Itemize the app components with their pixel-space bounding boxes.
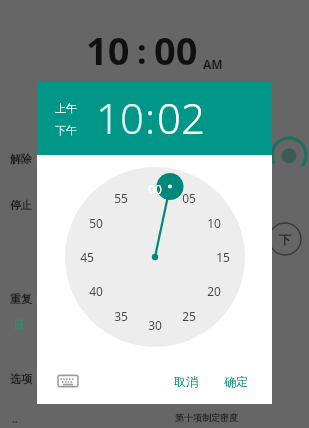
button[interactable]: 下 [268,222,302,256]
button[interactable]: 45 [74,244,100,270]
button[interactable]: 30 [142,312,168,338]
button[interactable]: Switch to keyboard input [52,365,84,397]
staticText: 日 [13,318,24,332]
button[interactable]: 10 [201,210,227,236]
staticText: 50 [89,215,103,231]
staticText: 下 [279,232,291,247]
staticText: .. [12,412,18,426]
staticText: : [137,28,147,74]
button[interactable]: 确定 [216,368,256,395]
button[interactable]: 下午 [54,122,78,138]
staticText: : [145,89,156,146]
button[interactable]: 35 [108,303,134,329]
staticText: 45 [80,249,94,265]
button[interactable]: 取消 [166,368,206,395]
staticText: 35 [114,308,128,324]
button[interactable]: Contact [272,138,306,172]
staticText: 30 [148,317,162,333]
button[interactable]: 15 [210,244,236,270]
button[interactable]: 40 [83,278,109,304]
staticText: 下午 [55,123,77,137]
staticText: 第十项制定密度 [175,412,238,423]
staticText: 15 [216,249,230,265]
staticText: 25 [182,308,196,324]
button[interactable]: 02 [156,88,206,147]
staticText: 05 [182,190,196,206]
staticText: 上午 [55,101,77,115]
staticText: 55 [114,190,128,206]
staticText: 取消 [174,374,198,389]
button[interactable]: 05 [176,185,202,211]
button[interactable]: 25 [176,303,202,329]
staticText: 选项 [10,372,32,386]
staticText: AM [203,56,223,72]
button[interactable]: 50 [83,210,109,236]
staticText: 10 [96,89,144,146]
staticText: 00 [154,24,198,76]
staticText: 20 [207,283,221,299]
staticText: 确定 [224,374,248,389]
staticText: 解除 [10,152,32,166]
button[interactable]: 20 [201,278,227,304]
button[interactable]: 55 [108,185,134,211]
button[interactable]: 上午 [54,100,78,116]
staticText: 10 [207,215,221,231]
staticText: 02 [157,89,205,146]
staticText: 40 [89,283,103,299]
button[interactable]: 10 [95,88,145,147]
staticText: 10 [86,24,130,76]
button[interactable]: 00 [142,176,168,202]
staticText: 重复 [10,292,32,306]
staticText: 停止 [10,198,32,212]
staticText: 00 [148,181,162,197]
